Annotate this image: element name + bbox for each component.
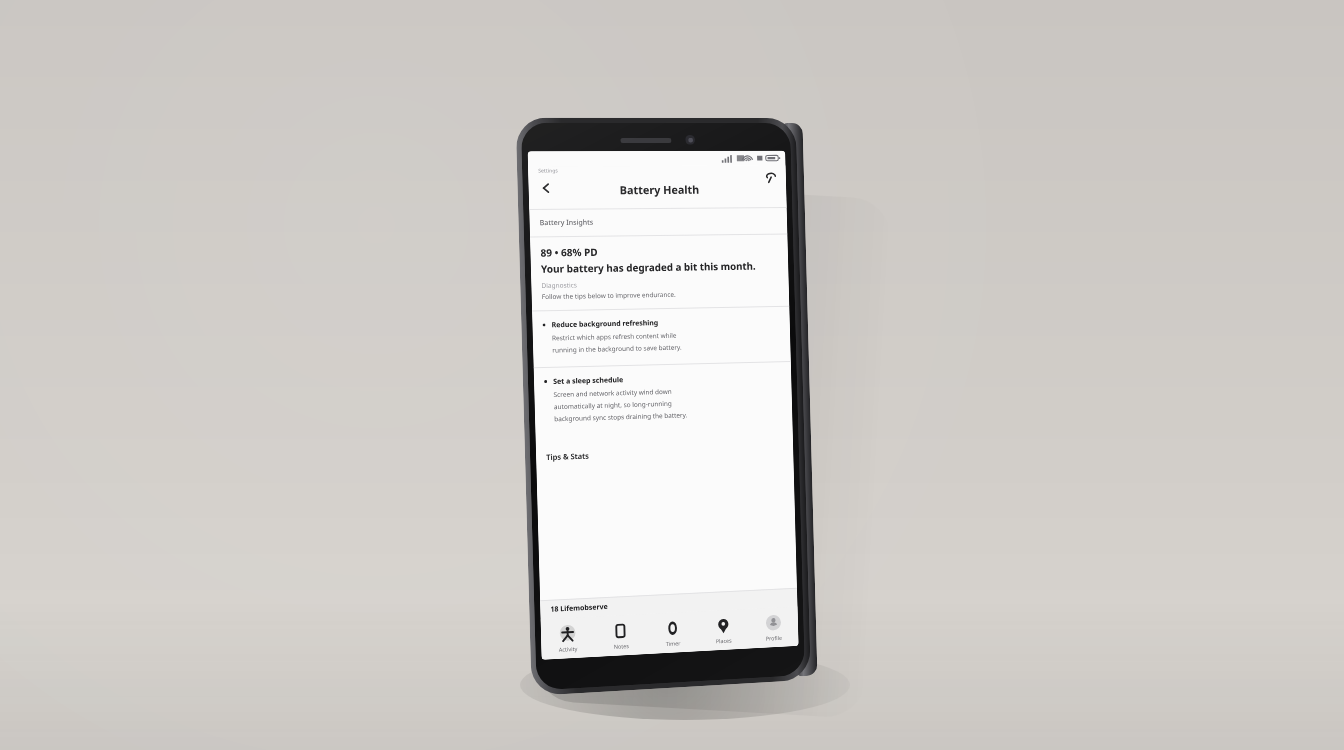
staticText: Your battery has degraded a bit this mon…	[541, 259, 756, 276]
staticText: Set a sleep schedule	[553, 375, 624, 387]
button[interactable]: Tips & Stats	[536, 438, 793, 468]
staticText: Screen and network activity wind down	[553, 387, 673, 399]
staticText: Settings	[538, 167, 558, 174]
staticText: automatically at night, so long-running	[554, 399, 672, 411]
button[interactable]: Profile	[748, 606, 799, 648]
button[interactable]: Notes	[594, 614, 647, 657]
staticText: Diagnostics	[541, 280, 578, 290]
staticText: Restrict which apps refresh content whil…	[552, 331, 677, 342]
staticText: running in the background to save batter…	[552, 343, 682, 355]
staticText: Follow the tips below to improve enduran…	[542, 290, 676, 301]
button[interactable]: More options	[759, 165, 782, 189]
staticText: Timer	[666, 639, 680, 647]
button[interactable]: Reduce background refreshing	[532, 307, 791, 367]
staticText: Tips & Stats	[546, 450, 589, 462]
staticText: Profile	[766, 634, 782, 642]
staticText: Places	[715, 637, 732, 644]
staticText: 89 • 68% PD	[540, 245, 598, 260]
staticText: Activity	[558, 645, 578, 653]
staticText: Reduce background refreshing	[551, 318, 659, 330]
staticText: Battery Insights	[540, 218, 594, 228]
staticText: Notes	[613, 642, 629, 650]
button[interactable]: Activity	[541, 617, 595, 660]
staticText: background sync stops draining the batte…	[554, 410, 688, 423]
button[interactable]: Places	[697, 609, 749, 651]
button[interactable]: Timer	[646, 611, 698, 654]
staticText: 18 Lifemobserve	[550, 602, 608, 615]
button[interactable]: Set a sleep schedule	[534, 362, 793, 436]
button[interactable]: Back	[532, 174, 559, 201]
staticText: Battery Health	[619, 182, 699, 197]
